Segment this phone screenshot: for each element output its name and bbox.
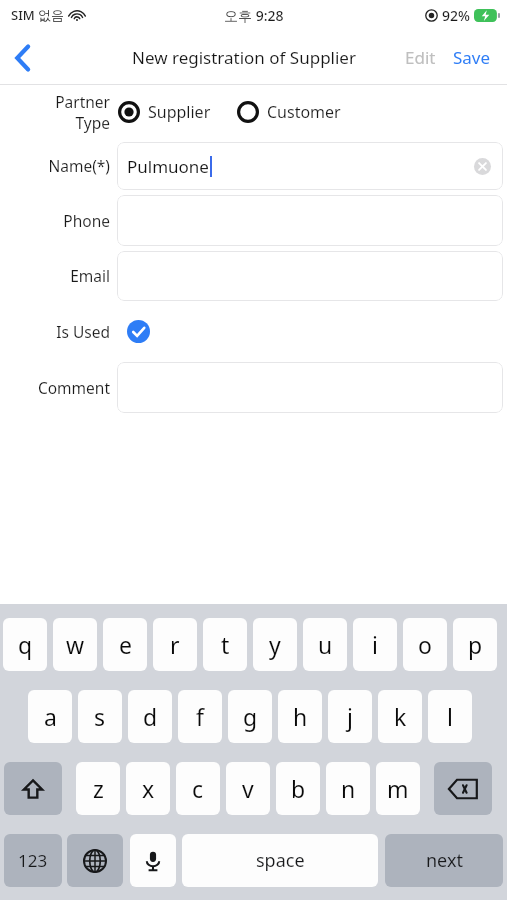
button[interactable]: a xyxy=(28,690,72,743)
staticText: p xyxy=(468,629,483,660)
button[interactable]: next xyxy=(385,834,503,887)
staticText: i xyxy=(372,629,378,660)
button[interactable]: v xyxy=(226,762,270,815)
staticText: SIM 없음 xyxy=(11,6,65,24)
staticText: a xyxy=(44,701,57,732)
staticText: next xyxy=(426,848,463,873)
staticText: y xyxy=(269,629,281,660)
button[interactable]: e xyxy=(103,618,147,671)
button[interactable]: h xyxy=(278,690,322,743)
button[interactable]: Voice input xyxy=(130,834,176,887)
staticText: Partner xyxy=(55,91,110,112)
staticText: Customer xyxy=(267,101,341,123)
button[interactable]: t xyxy=(203,618,247,671)
staticText: o xyxy=(418,629,432,660)
button[interactable]: Customer xyxy=(237,92,341,132)
button[interactable]: s xyxy=(78,690,122,743)
staticText: Is Used xyxy=(56,321,110,342)
staticText: h xyxy=(293,701,308,732)
staticText: t xyxy=(221,629,230,660)
button[interactable]: z xyxy=(76,762,120,815)
staticText: x xyxy=(142,773,155,804)
staticText: l xyxy=(447,701,453,732)
button[interactable]: j xyxy=(328,690,372,743)
staticText: Comment xyxy=(37,377,110,398)
button[interactable]: q xyxy=(3,618,47,671)
button[interactable]: b xyxy=(276,762,320,815)
staticText: Name(*) xyxy=(48,155,110,176)
button[interactable]: k xyxy=(378,690,422,743)
button[interactable]: Pulmuone xyxy=(117,142,503,190)
staticText: Email xyxy=(70,265,110,286)
staticText: k xyxy=(394,701,407,732)
button[interactable]: i xyxy=(353,618,397,671)
staticText: e xyxy=(119,629,132,660)
button[interactable]: p xyxy=(453,618,497,671)
button[interactable]: Supplier xyxy=(118,92,211,132)
staticText: Supplier xyxy=(148,101,211,123)
button[interactable]: g xyxy=(228,690,272,743)
staticText: Pulmuone xyxy=(127,155,209,178)
staticText: m xyxy=(387,773,409,804)
button[interactable]: Shift xyxy=(4,762,62,815)
staticText: 오후 9:28 xyxy=(224,6,284,25)
staticText: j xyxy=(347,701,353,732)
button[interactable]: o xyxy=(403,618,447,671)
staticText: Phone xyxy=(63,210,110,231)
staticText: z xyxy=(93,773,104,804)
button[interactable]: m xyxy=(376,762,420,815)
button[interactable]: f xyxy=(178,690,222,743)
staticText: u xyxy=(318,629,333,660)
button[interactable]: d xyxy=(128,690,172,743)
button[interactable]: r xyxy=(153,618,197,671)
staticText: g xyxy=(243,701,258,732)
button[interactable]: l xyxy=(428,690,472,743)
staticText: f xyxy=(196,701,204,732)
button[interactable]: Clear text xyxy=(469,153,495,179)
button[interactable]: Back xyxy=(0,35,46,81)
button[interactable]: Is Used checkbox xyxy=(118,311,158,351)
button[interactable]: x xyxy=(126,762,170,815)
staticText: space xyxy=(256,848,305,873)
staticText: w xyxy=(66,629,85,660)
staticText: q xyxy=(18,629,33,660)
staticText: b xyxy=(291,773,306,804)
button[interactable] xyxy=(117,251,503,301)
staticText: c xyxy=(192,773,204,804)
button[interactable]: Save xyxy=(451,40,493,75)
button[interactable]: c xyxy=(176,762,220,815)
button[interactable]: space xyxy=(182,834,378,887)
button[interactable]: 123 xyxy=(4,834,62,887)
staticText: v xyxy=(242,773,254,804)
staticText: Save xyxy=(453,46,491,69)
button[interactable]: w xyxy=(53,618,97,671)
staticText: r xyxy=(170,629,180,660)
staticText: New registration of Supplier xyxy=(132,46,356,69)
staticText: d xyxy=(143,701,158,732)
button[interactable]: y xyxy=(253,618,297,671)
staticText: Edit xyxy=(405,46,436,69)
button[interactable]: n xyxy=(326,762,370,815)
staticText: Type xyxy=(75,112,110,133)
staticText: 92% xyxy=(442,6,470,25)
button[interactable]: Backspace xyxy=(434,762,492,815)
button[interactable] xyxy=(117,195,503,246)
button[interactable] xyxy=(117,362,503,413)
staticText: n xyxy=(341,773,356,804)
button[interactable]: Edit xyxy=(401,40,440,75)
button[interactable]: Change keyboard language xyxy=(67,834,123,887)
staticText: s xyxy=(94,701,106,732)
staticText: 123 xyxy=(18,849,48,872)
button[interactable]: u xyxy=(303,618,347,671)
